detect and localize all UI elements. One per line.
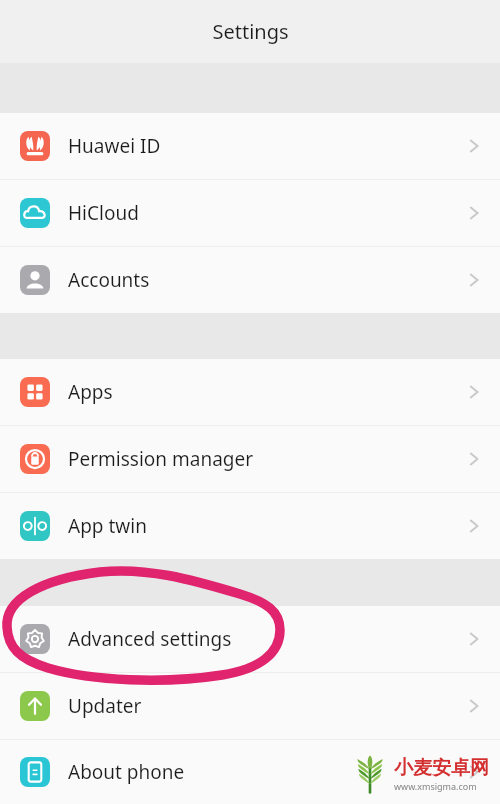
button[interactable]: Updater bbox=[0, 673, 500, 739]
staticText: Permission manager bbox=[68, 446, 254, 472]
button[interactable]: Accounts bbox=[0, 247, 500, 313]
staticText: Updater bbox=[68, 693, 142, 719]
button[interactable]: About phone bbox=[0, 740, 500, 804]
staticText: Apps bbox=[68, 379, 113, 405]
button[interactable]: HiCloud bbox=[0, 180, 500, 246]
button[interactable]: Apps bbox=[0, 359, 500, 425]
button[interactable]: Permission manager bbox=[0, 426, 500, 492]
staticText: www.xmsigma.com bbox=[394, 780, 477, 792]
staticText: Huawei ID bbox=[68, 133, 161, 159]
staticText: HiCloud bbox=[68, 200, 139, 226]
staticText: 小麦安卓网 bbox=[394, 756, 489, 780]
staticText: Accounts bbox=[68, 267, 150, 293]
staticText: App twin bbox=[68, 513, 147, 539]
button[interactable]: Advanced settings bbox=[0, 606, 500, 672]
staticText: About phone bbox=[68, 759, 185, 785]
button[interactable]: Huawei ID bbox=[0, 113, 500, 179]
staticText: Settings bbox=[212, 18, 289, 45]
button[interactable]: App twin bbox=[0, 493, 500, 559]
staticText: Advanced settings bbox=[68, 626, 232, 652]
